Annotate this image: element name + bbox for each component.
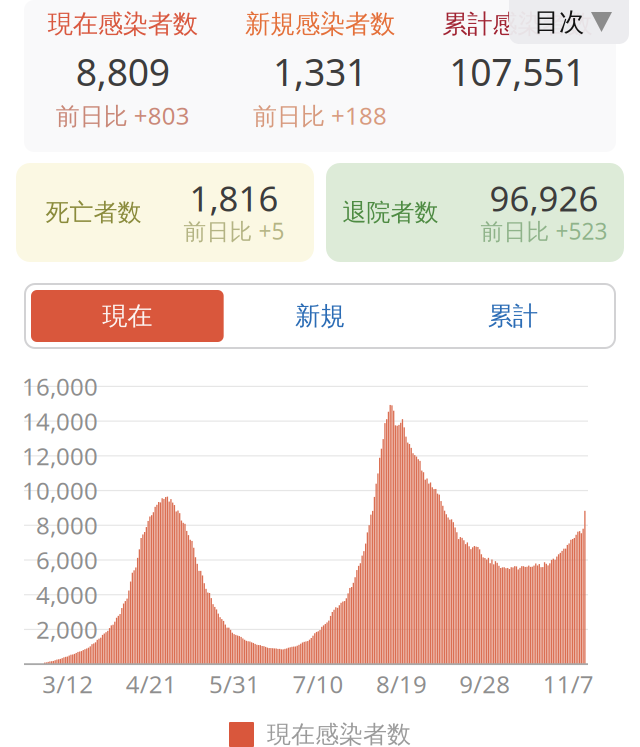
staticText: 1,816 (189, 175, 278, 221)
staticText: 2,000 (36, 613, 98, 645)
staticText: 退院者数 (342, 198, 438, 227)
staticText: 12,000 (22, 440, 98, 472)
staticText: 6,000 (36, 544, 98, 576)
button[interactable]: 新規 (224, 290, 416, 342)
staticText: 1,331 (273, 47, 367, 96)
staticText: 累計感染者数 (442, 8, 592, 39)
staticText: 死亡者数 (45, 198, 141, 227)
staticText: 前日比 +803 (56, 100, 190, 131)
staticText: 16,000 (22, 370, 98, 402)
staticText: 9/28 (459, 668, 510, 700)
staticText: 5/31 (209, 668, 260, 700)
button[interactable]: 現在 (31, 290, 224, 342)
staticText: 7/10 (292, 668, 343, 700)
staticText: 107,551 (449, 47, 585, 96)
staticText: 累計 (488, 300, 538, 331)
button[interactable]: 目次 (509, 0, 629, 44)
staticText: 8,809 (76, 47, 170, 96)
staticText: 新規 (295, 300, 345, 331)
staticText: 11/7 (543, 668, 594, 700)
button[interactable]: 累計 (416, 290, 609, 342)
staticText: 4,000 (36, 579, 98, 611)
staticText: 現在 (102, 300, 152, 331)
staticText: 14,000 (22, 405, 98, 437)
staticText: 10,000 (22, 475, 98, 506)
staticText: 96,926 (489, 175, 598, 221)
staticText: 前日比 +523 (480, 216, 607, 246)
staticText: 現在感染者数 (267, 720, 411, 747)
staticText: 8/19 (376, 668, 427, 700)
staticText: 前日比 +188 (253, 100, 387, 131)
staticText: 目次 (534, 6, 584, 37)
staticText: 新規感染者数 (245, 8, 395, 39)
staticText: 現在感染者数 (48, 8, 198, 39)
staticText: 8,000 (36, 509, 98, 541)
staticText: 前日比 +5 (183, 216, 284, 246)
staticText: 3/12 (42, 668, 93, 700)
staticText: 4/21 (126, 668, 177, 700)
